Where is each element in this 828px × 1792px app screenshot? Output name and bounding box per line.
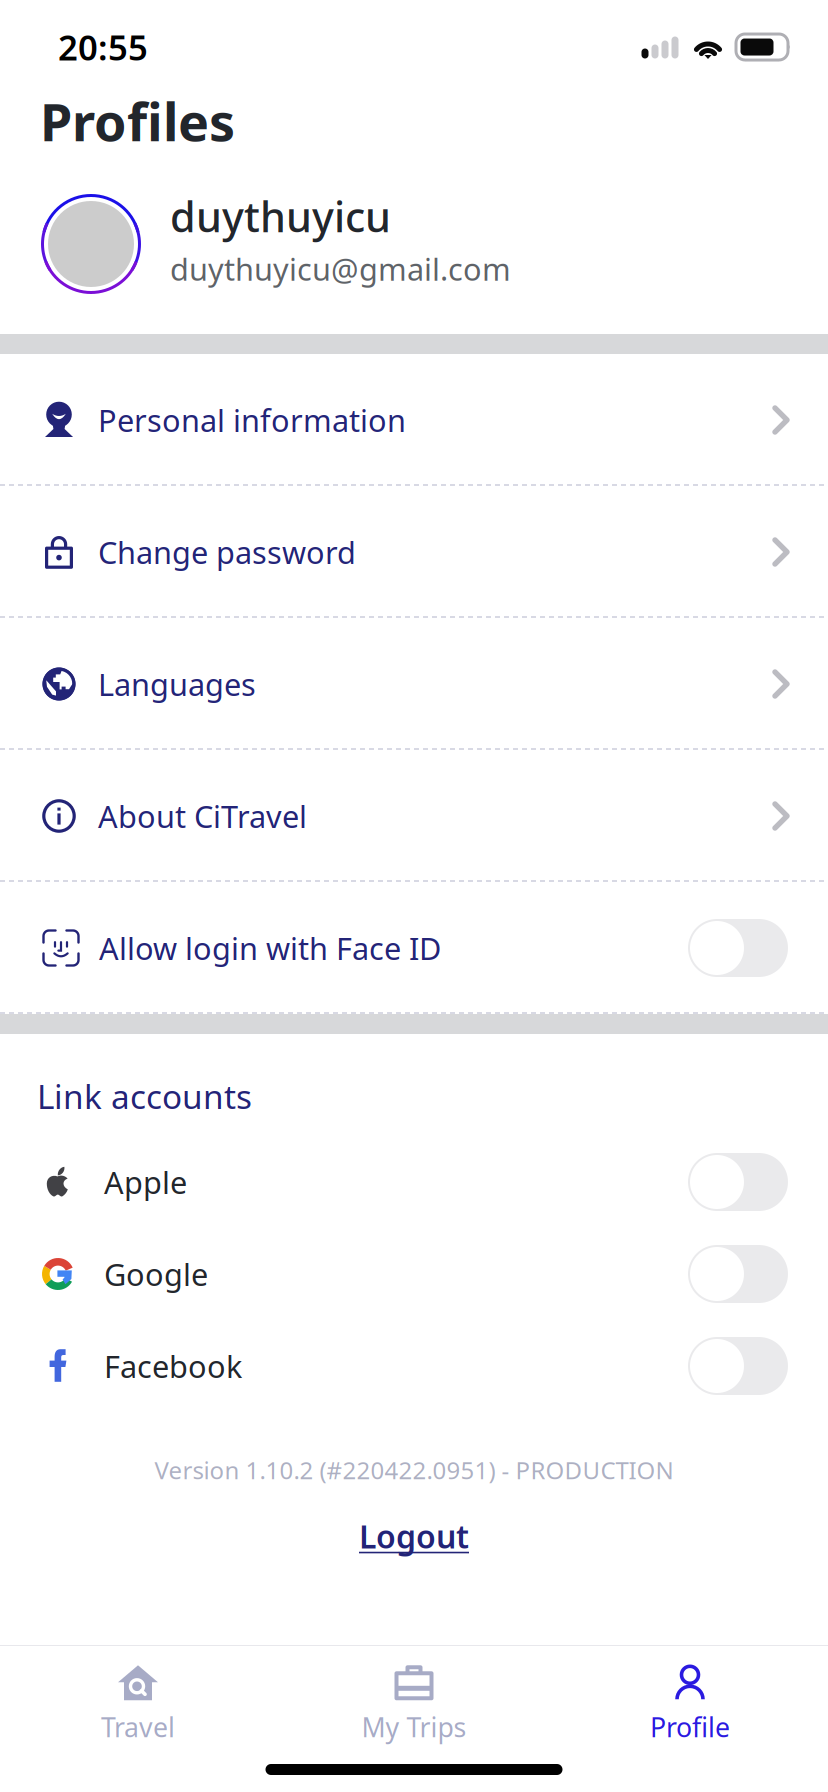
staticText: Link accounts: [37, 1074, 252, 1118]
button[interactable]: duythuyicu: [0, 148, 828, 334]
staticText: Google: [104, 1254, 208, 1294]
button[interactable]: Apple: [0, 1136, 828, 1228]
button[interactable]: Logout: [329, 1486, 499, 1582]
button[interactable]: Languages: [0, 618, 828, 750]
staticText: duythuyicu: [170, 189, 391, 244]
button[interactable]: Facebook: [0, 1320, 828, 1412]
button[interactable]: My Trips: [276, 1646, 552, 1746]
staticText: Profiles: [40, 86, 235, 156]
button[interactable]: Personal information: [0, 354, 828, 486]
button[interactable]: Profile: [552, 1646, 828, 1746]
staticText: 20:55: [58, 24, 148, 70]
staticText: Apple: [104, 1162, 187, 1202]
button[interactable]: Change password: [0, 486, 828, 618]
button[interactable]: About CiTravel: [0, 750, 828, 882]
staticText: Allow login with Face ID: [99, 928, 441, 968]
staticText: Profile: [650, 1709, 730, 1745]
staticText: About CiTravel: [98, 796, 307, 836]
staticText: Personal information: [98, 400, 406, 440]
staticText: Logout: [359, 1515, 469, 1557]
staticText: Change password: [98, 532, 356, 572]
staticText: Version 1.10.2 (#220422.0951) - PRODUCTI…: [154, 1454, 673, 1486]
button[interactable]: Allow login with Face ID: [0, 882, 828, 1014]
button[interactable]: Travel: [0, 1646, 276, 1746]
button[interactable]: Google: [0, 1228, 828, 1320]
staticText: Languages: [98, 664, 256, 704]
staticText: Facebook: [104, 1346, 242, 1386]
staticText: My Trips: [361, 1709, 466, 1745]
staticText: Travel: [101, 1709, 175, 1745]
staticText: duythuyicu@gmail.com: [170, 249, 511, 289]
